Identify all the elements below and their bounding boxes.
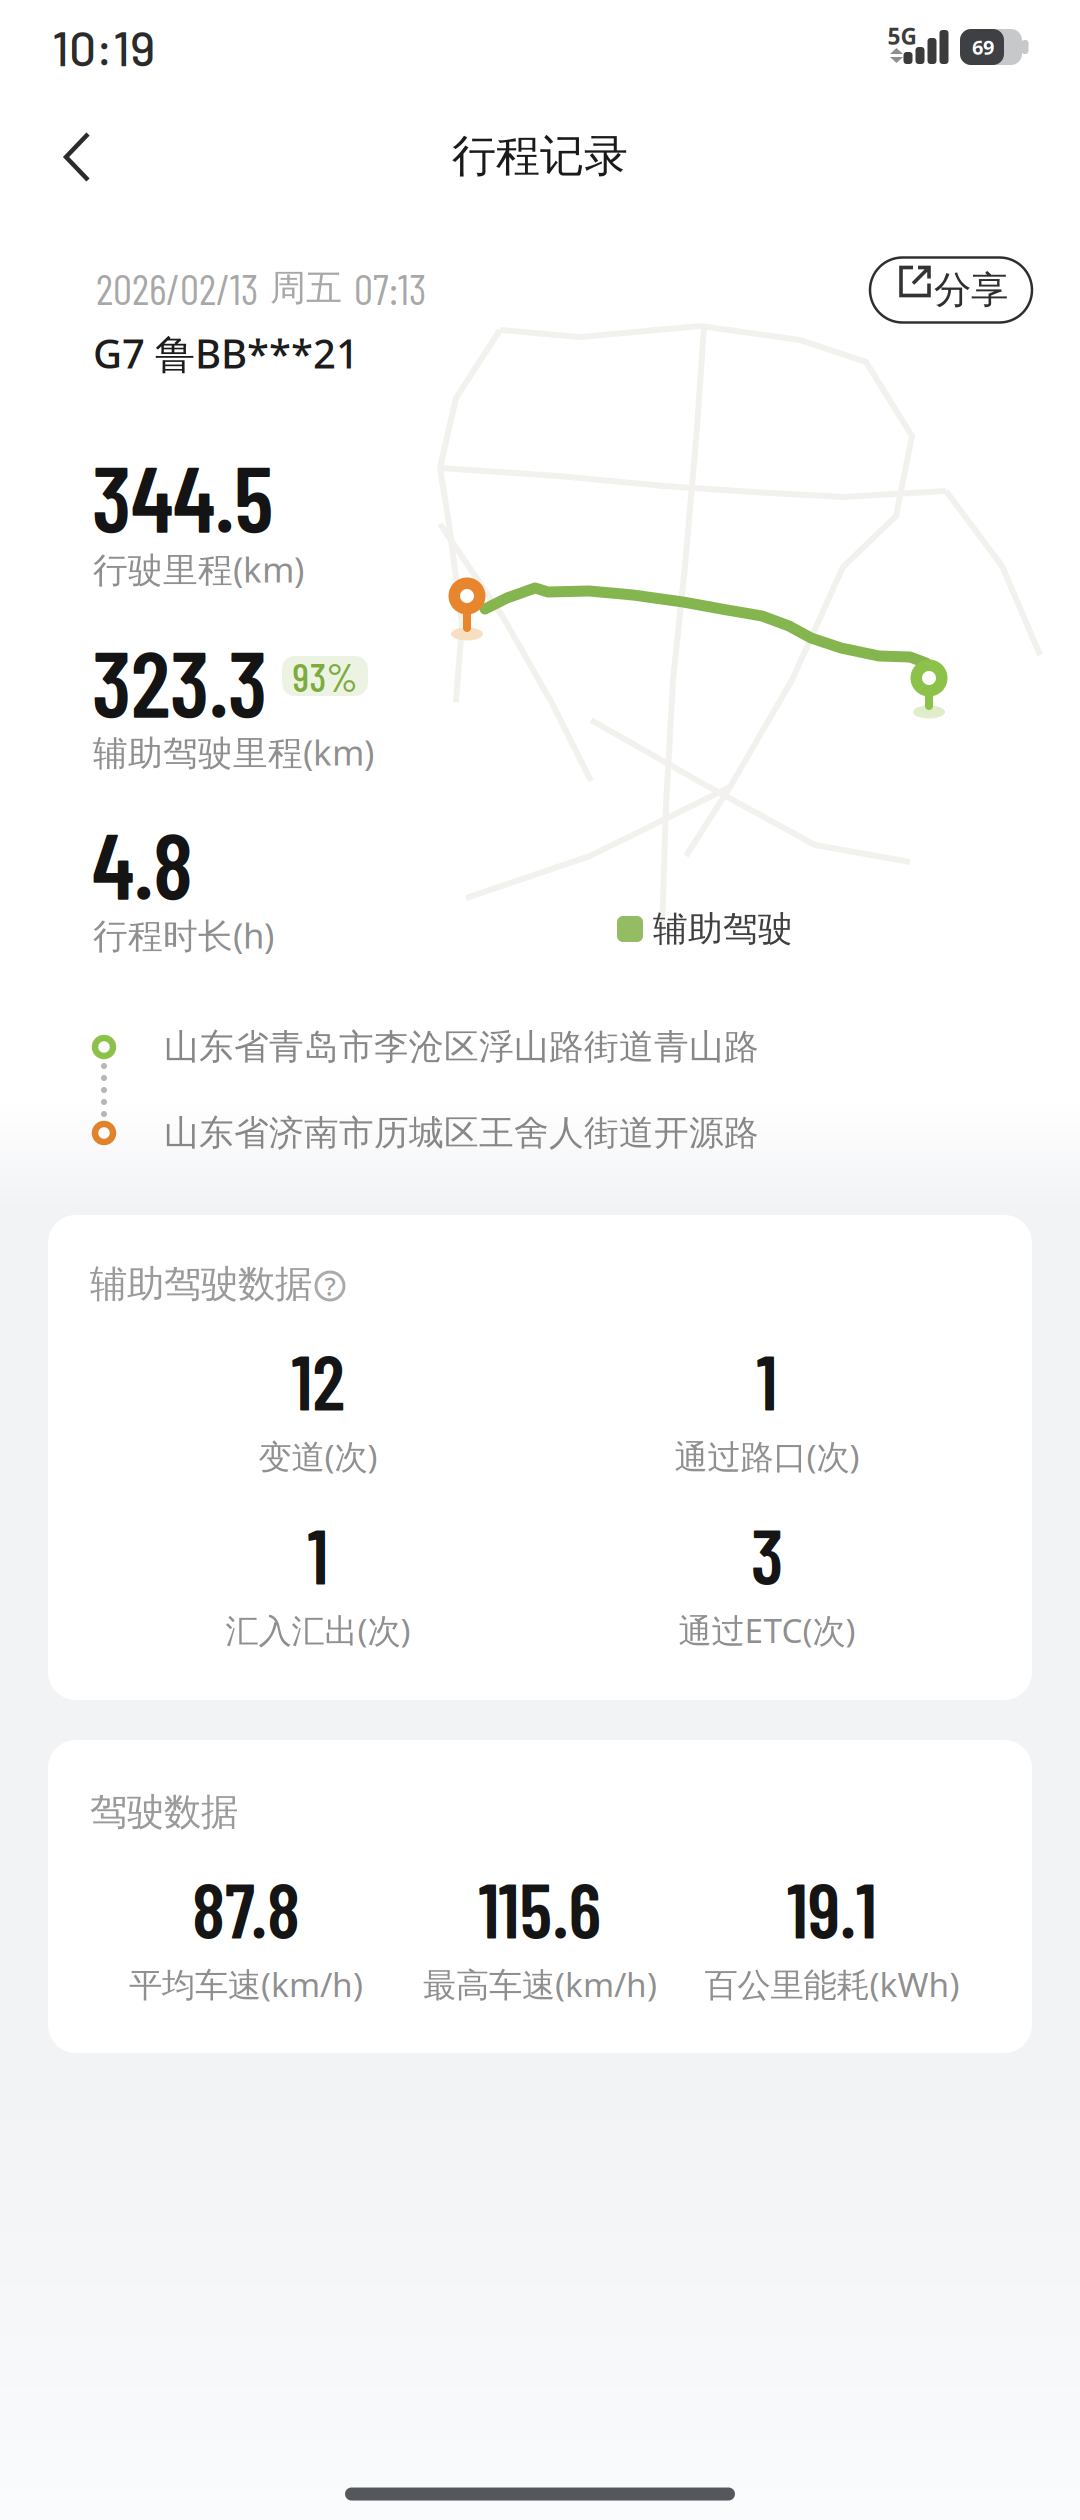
- staticText: 辅助驾驶数据: [90, 1261, 312, 1307]
- staticText: 山东省青岛市李沧区浮山路街道青山路: [164, 1026, 759, 1068]
- staticText: 通过路口(次): [674, 1434, 859, 1478]
- button[interactable]: Back: [48, 120, 122, 194]
- staticText: 19.1: [787, 1862, 877, 1954]
- staticText: 最高车速(km/h): [423, 1962, 657, 2006]
- staticText: 辅助驾驶: [653, 908, 793, 950]
- staticText: 5G: [887, 21, 916, 51]
- button[interactable]: Help: [308, 1264, 352, 1308]
- staticText: 百公里能耗(kWh): [704, 1962, 959, 2006]
- staticText: 辅助驾驶里程(km): [93, 729, 374, 775]
- staticText: 行程记录: [452, 129, 628, 183]
- staticText: 分享: [934, 267, 1008, 313]
- staticText: G7 鲁BB***21: [93, 326, 359, 380]
- staticText: ?: [324, 1269, 335, 1303]
- staticText: 行驶里程(km): [93, 546, 304, 592]
- staticText: 1: [756, 1334, 777, 1426]
- staticText: 通过ETC(次): [678, 1608, 855, 1652]
- staticText: 07:13: [354, 262, 426, 314]
- staticText: 12: [291, 1334, 344, 1426]
- staticText: 平均车速(km/h): [129, 1962, 363, 2006]
- staticText: 1: [307, 1508, 328, 1600]
- button[interactable]: 分享: [870, 257, 1032, 322]
- staticText: 3: [751, 1508, 783, 1600]
- staticText: 4.8: [92, 808, 193, 918]
- staticText: 69: [972, 34, 994, 60]
- staticText: 115.6: [478, 1862, 601, 1954]
- staticText: 2026/02/13: [96, 262, 258, 314]
- staticText: 山东省济南市历城区王舍人街道开源路: [164, 1112, 759, 1154]
- staticText: 驾驶数据: [90, 1789, 238, 1835]
- staticText: 93%: [292, 652, 357, 700]
- staticText: 87.8: [192, 1862, 300, 1954]
- staticText: 变道(次): [258, 1434, 377, 1478]
- staticText: 323.3: [92, 626, 267, 736]
- staticText: 10:19: [52, 18, 155, 76]
- staticText: 汇入汇出(次): [225, 1608, 410, 1652]
- staticText: 行程时长(h): [93, 912, 274, 958]
- staticText: 周五: [270, 266, 342, 310]
- staticText: 344.5: [92, 441, 273, 551]
